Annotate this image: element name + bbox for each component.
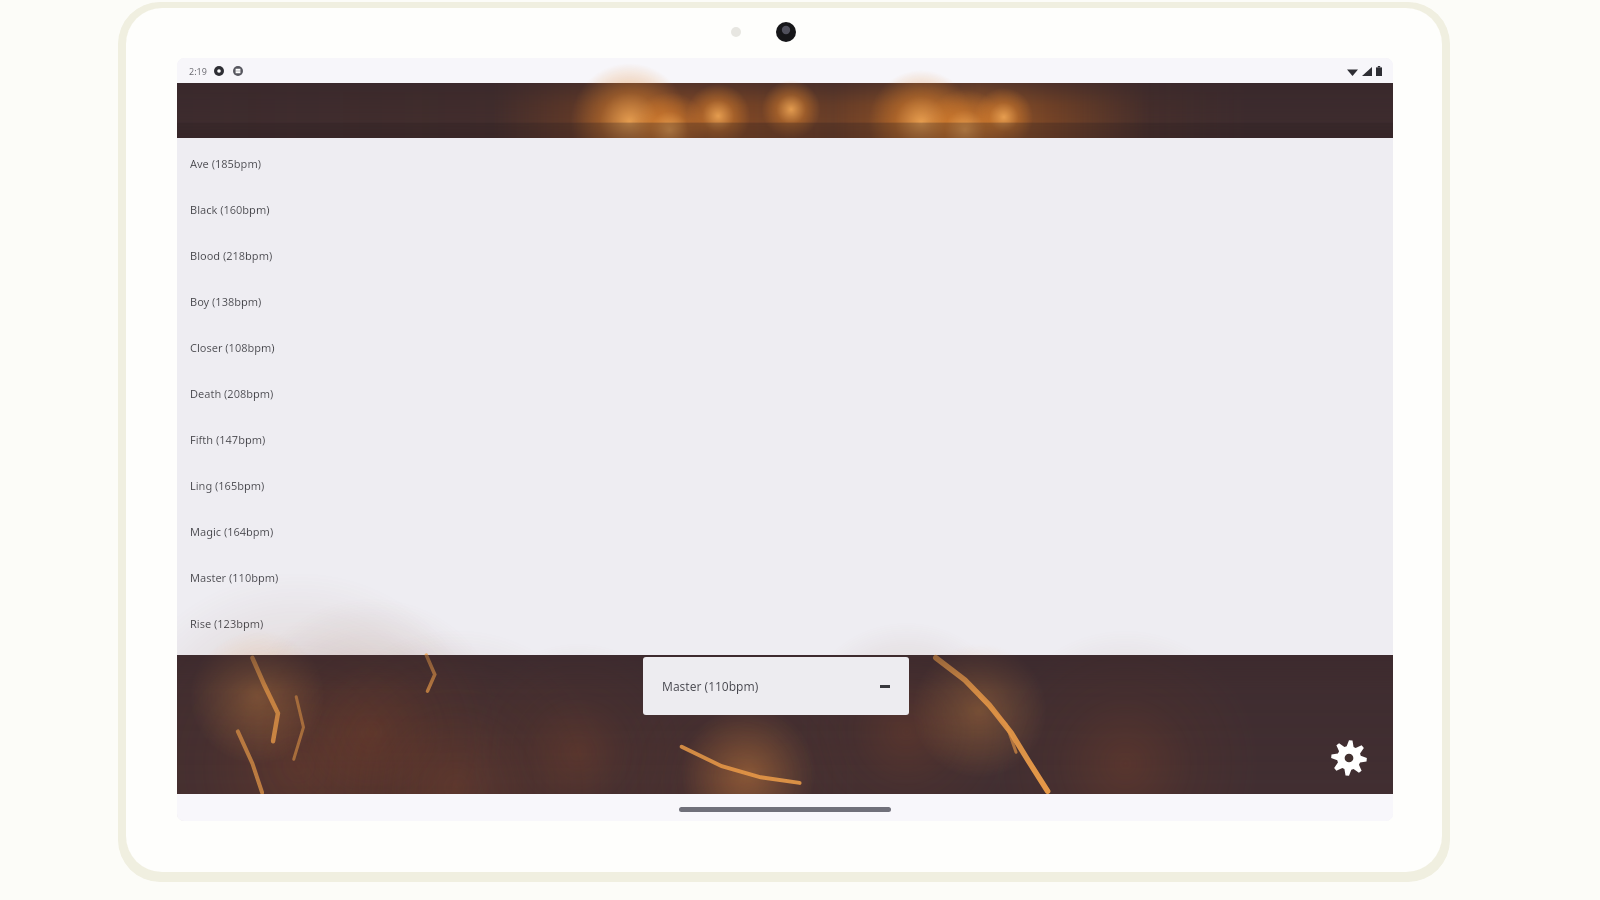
staticText: Closer (108bpm)	[190, 340, 275, 355]
staticText: 2:19	[189, 65, 207, 77]
staticText: Rise (123bpm)	[190, 616, 264, 631]
button[interactable]: Fifth (147bpm)	[177, 416, 1393, 462]
staticText: Fifth (147bpm)	[190, 432, 266, 447]
button[interactable]: Boy (138bpm)	[177, 278, 1393, 324]
staticText: Ave (185bpm)	[190, 156, 261, 171]
button[interactable]: Ave (185bpm)	[177, 140, 1393, 186]
button[interactable]: Closer (108bpm)	[177, 324, 1393, 370]
staticText: Master (110bpm)	[662, 678, 759, 694]
button[interactable]: Magic (164bpm)	[177, 508, 1393, 554]
staticText: Master (110bpm)	[190, 570, 279, 585]
button[interactable]: Ling (165bpm)	[177, 462, 1393, 508]
staticText: Ling (165bpm)	[190, 478, 265, 493]
button[interactable]: Settings	[1325, 734, 1373, 782]
staticText: Boy (138bpm)	[190, 294, 262, 309]
button[interactable]: Master (110bpm)	[177, 554, 1393, 600]
staticText: Death (208bpm)	[190, 386, 274, 401]
staticText: Magic (164bpm)	[190, 524, 274, 539]
button[interactable]: Blood (218bpm)	[177, 232, 1393, 278]
staticText: Black (160bpm)	[190, 202, 270, 217]
button[interactable]: Master (110bpm)	[643, 657, 909, 715]
button[interactable]: Black (160bpm)	[177, 186, 1393, 232]
staticText: Blood (218bpm)	[190, 248, 273, 263]
button[interactable]: Death (208bpm)	[177, 370, 1393, 416]
button[interactable]: Rise (123bpm)	[177, 600, 1393, 646]
